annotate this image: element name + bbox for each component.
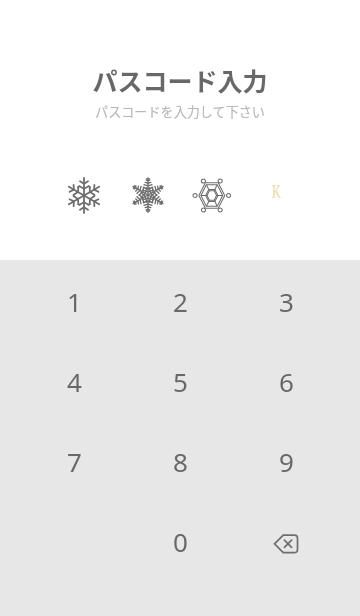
staticText: 0 — [173, 524, 188, 559]
button[interactable]: 0 — [140, 511, 220, 571]
staticText: 4 — [67, 364, 82, 399]
staticText: K — [271, 179, 281, 203]
staticText: パスコードを入力して下さい — [95, 102, 265, 121]
staticText: 1 — [67, 284, 82, 319]
button[interactable]: Backspace — [246, 511, 326, 571]
button[interactable]: 3 — [246, 271, 326, 331]
staticText: 7 — [67, 444, 82, 479]
button[interactable]: 7 — [34, 431, 114, 491]
staticText: 2 — [173, 284, 188, 319]
staticText: 8 — [173, 444, 188, 479]
staticText: 6 — [279, 364, 294, 399]
other: Backspace — [271, 526, 301, 556]
button[interactable]: 1 — [34, 271, 114, 331]
button[interactable]: 5 — [140, 351, 220, 411]
button[interactable]: 2 — [140, 271, 220, 331]
button[interactable]: 9 — [246, 431, 326, 491]
button[interactable]: 8 — [140, 431, 220, 491]
staticText: パスコード入力 — [92, 62, 268, 98]
button[interactable]: 6 — [246, 351, 326, 411]
staticText: 9 — [279, 444, 294, 479]
staticText: 3 — [279, 284, 294, 319]
staticText: 5 — [173, 364, 188, 399]
button[interactable]: 4 — [34, 351, 114, 411]
